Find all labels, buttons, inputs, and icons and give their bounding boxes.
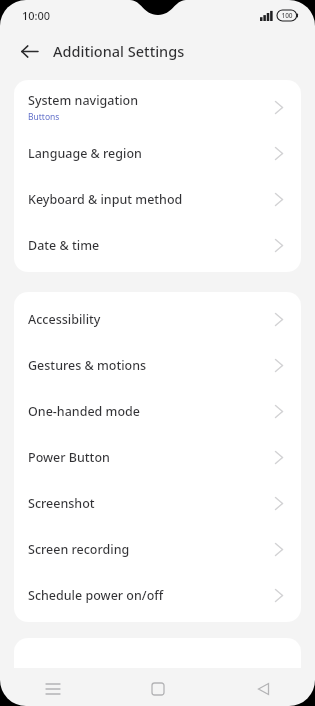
button[interactable]: One-handed mode [14, 388, 301, 434]
staticText: 10:00 [22, 8, 51, 23]
button[interactable]: Power Button [14, 434, 301, 480]
staticText: One-handed mode [28, 403, 140, 420]
button[interactable]: Schedule power on/off [14, 572, 301, 618]
staticText: Keyboard & input method [28, 191, 183, 208]
staticText: Additional Settings [53, 41, 185, 61]
button[interactable]: Back [246, 672, 280, 706]
staticText: 100 [281, 11, 293, 20]
staticText: Date & time [28, 237, 100, 254]
button[interactable]: Keyboard & input method [14, 176, 301, 222]
staticText: Schedule power on/off [28, 587, 164, 604]
staticText: System navigation [28, 92, 139, 109]
staticText: Language & region [28, 145, 142, 162]
staticText: Screen recording [28, 541, 130, 558]
staticText: Power Button [28, 449, 110, 466]
button[interactable]: Back [14, 36, 44, 66]
button[interactable]: Date & time [14, 222, 301, 268]
staticText: Accessibility [28, 311, 101, 328]
staticText: Buttons [28, 111, 60, 123]
staticText: Screenshot [28, 495, 95, 512]
button[interactable]: Screen recording [14, 526, 301, 572]
staticText: Gestures & motions [28, 357, 147, 374]
button[interactable]: Accessibility [14, 296, 301, 342]
button[interactable]: Screenshot [14, 480, 301, 526]
button[interactable]: Language & region [14, 130, 301, 176]
button[interactable]: Home [141, 672, 175, 706]
button[interactable]: Recent apps [36, 672, 70, 706]
button[interactable]: Gestures & motions [14, 342, 301, 388]
button[interactable]: System navigation [14, 84, 301, 130]
